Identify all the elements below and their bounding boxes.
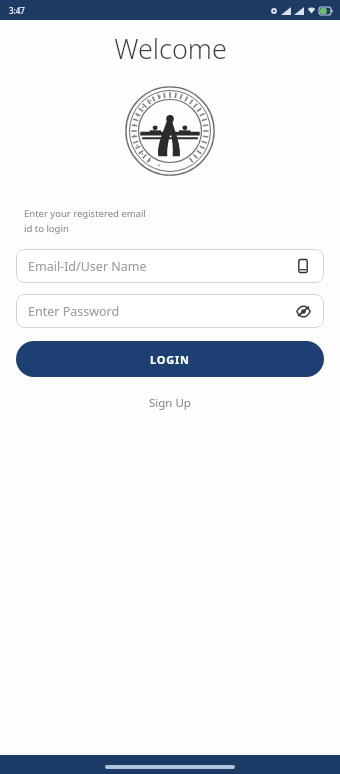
staticText: LOGIN [150,352,190,367]
staticText: Enter Password [28,303,294,320]
button[interactable]: LOGIN [16,341,324,377]
other: Use device login [294,257,312,275]
button[interactable]: Enter Password [16,294,324,328]
staticText: Email-Id/User Name [28,258,294,275]
staticText: Welcome [114,30,227,67]
other: Toggle password visibility [294,302,312,320]
staticText: 3:47 [9,5,25,16]
staticText: id to login [24,222,69,235]
staticText: Enter your registered email [24,207,146,220]
button[interactable]: Sign Up [133,391,207,415]
button[interactable]: Email-Id/User Name [16,249,324,283]
staticText: Sign Up [149,395,191,411]
